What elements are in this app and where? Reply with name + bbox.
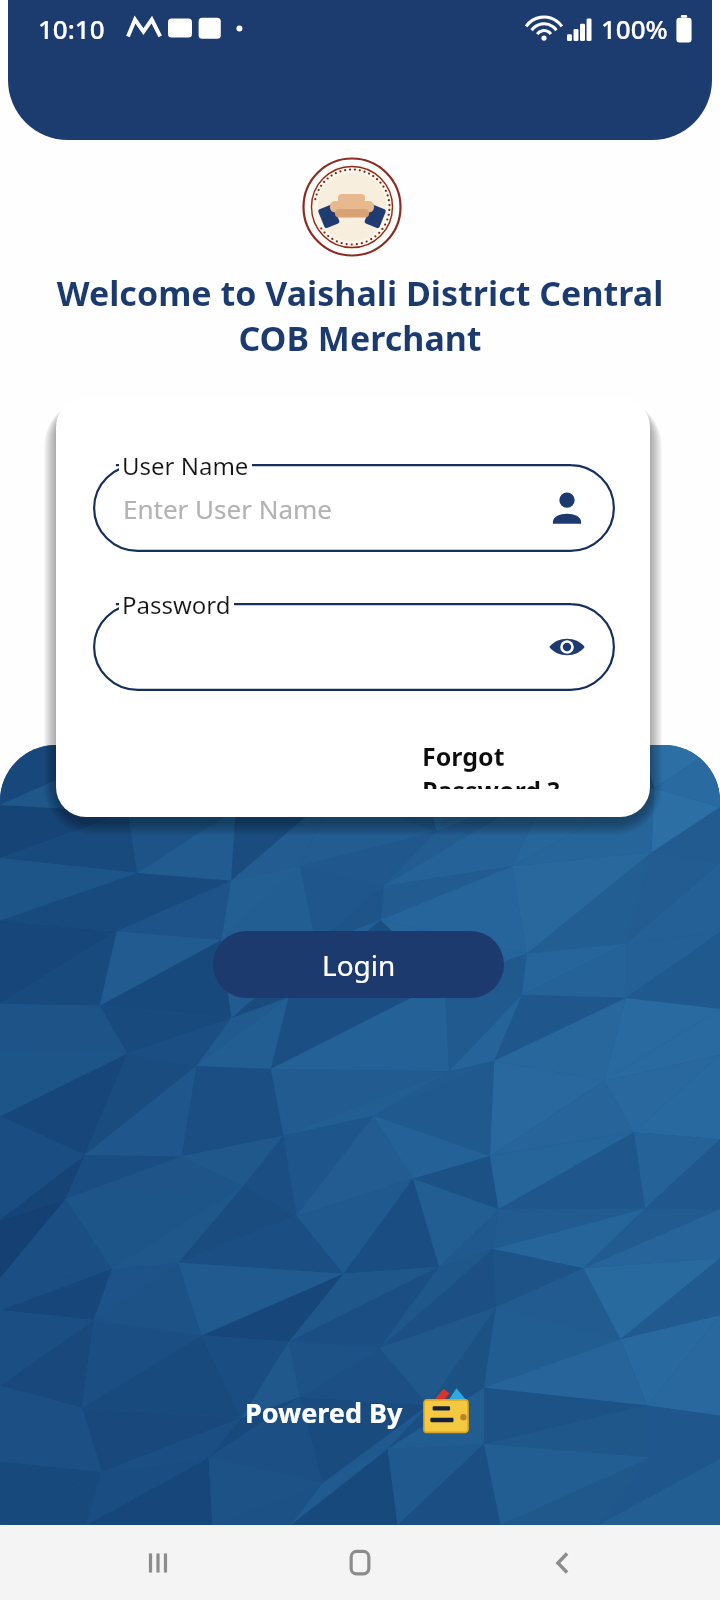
staticText: Welcome to Vaishali District Central COB… (34, 270, 686, 361)
staticText: Password (122, 588, 231, 621)
button[interactable]: Recents (113, 1525, 203, 1600)
staticText: Enter User Name (123, 491, 333, 526)
staticText: 100% (601, 11, 668, 46)
staticText: 10:10 (38, 11, 105, 46)
button[interactable]: Password (93, 603, 615, 691)
button[interactable]: Back (518, 1525, 608, 1600)
button[interactable]: Login (213, 931, 504, 998)
staticText: Login (322, 946, 396, 984)
staticText: Powered By (245, 1394, 403, 1431)
staticText: Forgot Password ? (422, 739, 618, 789)
button[interactable]: Show password (541, 621, 593, 673)
button[interactable]: Forgot Password ? (422, 739, 618, 789)
button[interactable]: User Name (93, 464, 615, 552)
button[interactable]: Home (315, 1525, 405, 1600)
staticText: User Name (122, 449, 249, 482)
button[interactable]: User (541, 482, 593, 534)
